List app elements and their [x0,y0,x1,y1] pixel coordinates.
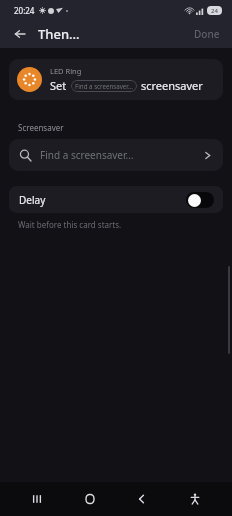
staticText: Delay [19,193,186,207]
staticText: 24 [211,7,218,15]
staticText: Find a screensaver… [40,148,202,162]
staticText: Then… [38,25,80,43]
staticText: Find a screensaver… [75,82,133,90]
staticText: Wait before this card starts. [18,219,122,230]
button[interactable]: Back [9,23,31,45]
staticText: Screensaver [18,122,64,133]
staticText: screensaver [141,78,203,93]
button[interactable]: Back [127,484,157,514]
button[interactable]: Recents [22,484,52,514]
button[interactable]: Done [188,24,226,44]
button[interactable]: Home [75,484,105,514]
staticText: Done [194,27,220,41]
button[interactable]: LED Ring [9,59,223,100]
staticText: 20:24 [14,5,35,16]
button[interactable]: Delay toggle [186,192,214,208]
button[interactable]: Delay [9,186,223,213]
button[interactable]: Find a screensaver… [9,139,223,171]
button[interactable]: Accessibility [180,484,210,514]
staticText: LED Ring [50,66,82,76]
staticText: Set [50,78,67,93]
